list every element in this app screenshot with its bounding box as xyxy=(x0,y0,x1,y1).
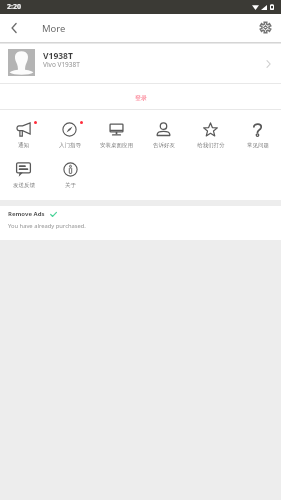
staticText: 发送反馈 xyxy=(13,182,35,189)
button[interactable]: 安装桌面应用 xyxy=(93,122,140,149)
staticText: V1938T xyxy=(43,50,73,62)
button[interactable]: 发送反馈 xyxy=(0,162,47,189)
button[interactable]: Back xyxy=(0,14,28,42)
button[interactable]: 告诉好友 xyxy=(140,122,187,149)
staticText: 告诉好友 xyxy=(153,142,175,149)
staticText: Remove Ads xyxy=(8,210,45,218)
staticText: Vivo V1938T xyxy=(43,60,80,69)
staticText: 入门指导 xyxy=(59,142,81,149)
button[interactable]: V1938T xyxy=(0,44,281,83)
staticText: 2:20 xyxy=(7,2,21,12)
staticText: You have already purchased. xyxy=(8,222,86,230)
staticText: 常见问题 xyxy=(247,142,269,149)
staticText: 关于 xyxy=(65,182,76,189)
button[interactable]: 入门指导 xyxy=(46,122,93,149)
button[interactable]: Settings xyxy=(253,14,281,42)
button[interactable]: 关于 xyxy=(47,162,94,189)
button[interactable]: 登录 xyxy=(0,84,281,109)
staticText: More xyxy=(42,22,66,35)
staticText: 安装桌面应用 xyxy=(100,142,133,149)
staticText: 登录 xyxy=(135,94,147,102)
button[interactable]: 通知 xyxy=(0,122,46,149)
staticText: 通知 xyxy=(18,142,29,149)
button[interactable]: Remove Ads xyxy=(0,206,281,240)
button[interactable]: 给我们打分 xyxy=(187,122,234,149)
button[interactable]: 常见问题 xyxy=(234,122,281,149)
staticText: 给我们打分 xyxy=(197,142,225,149)
